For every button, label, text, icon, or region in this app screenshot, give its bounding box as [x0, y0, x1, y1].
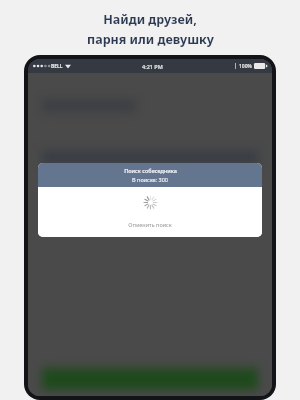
staticText: 100%: [239, 63, 252, 70]
staticText: Поиск собеседника: [124, 167, 177, 174]
other: Loading: [144, 196, 157, 209]
staticText: Найди друзей,: [103, 11, 197, 28]
staticText: В поиске: 300: [132, 176, 168, 183]
staticText: 4:21 PM: [142, 63, 163, 70]
button[interactable]: Отменить поиск: [38, 218, 262, 231]
staticText: парня или девушку: [87, 31, 214, 48]
staticText: Отменить поиск: [128, 221, 172, 228]
staticText: BELL: [51, 63, 63, 70]
